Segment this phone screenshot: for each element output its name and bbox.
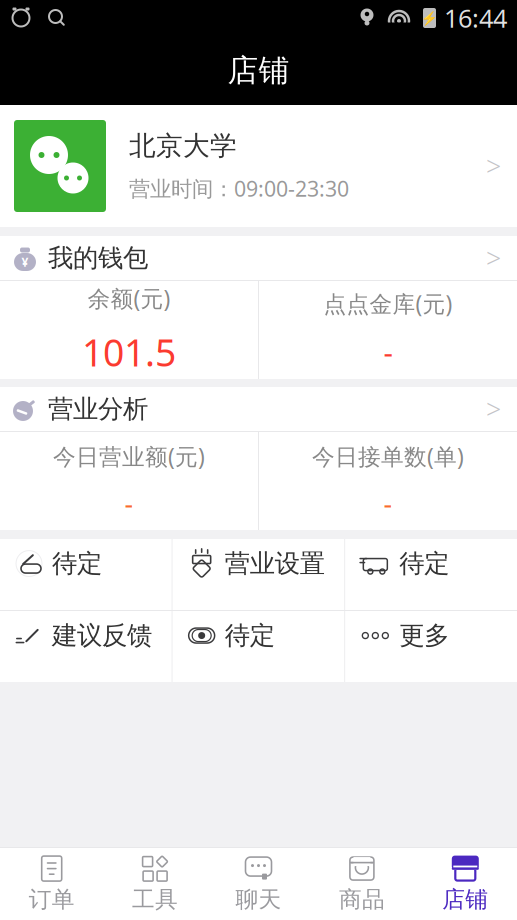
button[interactable]: 订单 [0,848,103,920]
button[interactable]: 余额(元) [0,281,258,379]
staticText: 今日营业额(元) [53,441,205,471]
button[interactable]: 聊天 [207,848,310,920]
button[interactable]: 营业设置 [173,539,344,610]
button[interactable]: 营业分析 [0,387,517,431]
staticText: 我的钱包 [48,242,148,273]
button[interactable]: 店铺 [414,848,517,920]
button[interactable]: 点点金库(元) [259,281,517,379]
staticText: - [124,485,133,521]
staticText: ¥ [21,254,28,270]
staticText: 店铺 [227,52,289,89]
button[interactable]: 更多 [345,611,517,682]
staticText: 16:44 [444,1,507,35]
staticText: 待定 [52,548,102,579]
staticText: 点点金库(元) [323,288,452,319]
staticText: 北京大学 [129,129,237,162]
staticText: 营业时间：09:00-23:30 [129,174,349,202]
staticText: - [383,333,392,372]
staticText: 工具 [132,886,178,913]
staticText: 待定 [225,620,275,651]
staticText: 余额(元) [87,283,170,313]
staticText: 订单 [29,886,75,913]
button[interactable]: 北京大学 [0,105,517,227]
button[interactable]: 今日营业额(元) [0,432,258,530]
staticText: - [383,485,392,521]
staticText: 今日接单数(单) [312,441,464,471]
staticText: > [486,391,501,427]
button[interactable]: 待定 [345,539,517,610]
staticText: 待定 [399,548,449,579]
staticText: 营业分析 [48,393,148,424]
staticText: > [486,240,501,276]
staticText: ⚡ [421,10,438,26]
staticText: 聊天 [235,886,281,913]
staticText: 店铺 [442,886,488,913]
button[interactable]: 待定 [173,611,344,682]
staticText: 101.5 [82,327,176,377]
button[interactable]: 工具 [103,848,207,920]
button[interactable]: 待定 [0,539,172,610]
button[interactable]: 今日接单数(单) [259,432,517,530]
button[interactable]: 建议反馈 [0,611,172,682]
staticText: 建议反馈 [52,620,152,651]
staticText: 营业设置 [225,548,325,579]
button[interactable]: 商品 [310,848,414,920]
staticText: 商品 [339,886,385,913]
staticText: > [486,148,501,184]
button[interactable]: ¥ [0,236,517,280]
staticText: 更多 [399,620,449,651]
